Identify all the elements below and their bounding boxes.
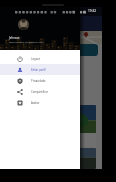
staticText: Avaliar [31,101,40,105]
staticText: jeferson.jeferson@gmail.com [9,40,44,43]
button[interactable]: Avaliar [0,97,80,108]
staticText: Jeferson [9,36,20,39]
staticText: 19:32 [88,9,97,13]
staticText: Privacidade [31,79,46,83]
button[interactable]: Compartilhar [0,86,80,97]
staticText: Compartilhar [31,90,48,94]
staticText: Logout [31,57,40,61]
staticText: Editar perfil [31,68,46,72]
button[interactable]: Privacidade [0,75,80,86]
button[interactable]: Editar perfil [0,64,80,75]
button[interactable]: Logout [0,53,80,64]
